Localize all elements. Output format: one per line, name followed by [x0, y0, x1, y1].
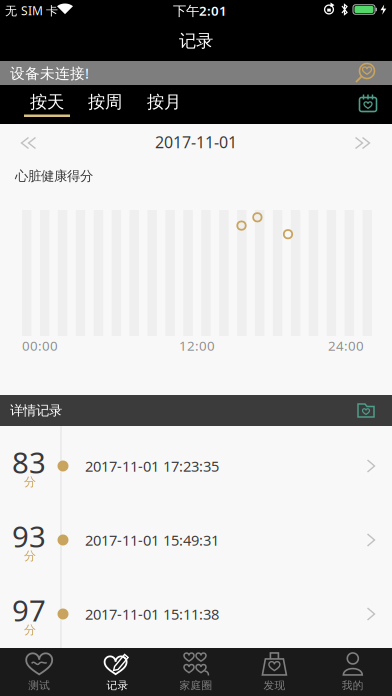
button[interactable]: 后一天 [349, 133, 373, 153]
staticText: 97 [12, 590, 46, 629]
button[interactable]: 测试 [0, 648, 78, 696]
button[interactable]: 93 [0, 500, 392, 574]
staticText: 分 [24, 623, 36, 637]
staticText: 分 [24, 549, 36, 563]
staticText: 按月 [147, 91, 181, 113]
staticText: 无 SIM 卡 [5, 2, 58, 18]
staticText: 2017-11-01 [155, 131, 237, 153]
staticText: 83 [12, 442, 46, 481]
button[interactable]: 前一天 [18, 133, 42, 153]
staticText: 2017-11-01 15:11:38 [85, 604, 219, 624]
staticText: 分 [24, 475, 36, 489]
button[interactable]: 发现 [235, 648, 314, 696]
staticText: 我的 [342, 679, 364, 692]
staticText: 按周 [88, 91, 122, 113]
staticText: 心脏健康得分 [15, 168, 93, 184]
staticText: 12:00 [179, 337, 215, 354]
staticText: 93 [12, 516, 46, 555]
button[interactable]: 97 [0, 574, 392, 648]
button[interactable]: 83 [0, 426, 392, 500]
button[interactable]: 导出记录 [357, 402, 375, 419]
button[interactable]: 选择日期 [357, 91, 379, 115]
staticText: 详情记录 [10, 402, 62, 419]
button[interactable]: 记录 [78, 648, 157, 696]
staticText: 设备未连接! [10, 63, 89, 83]
staticText: 记录 [107, 679, 129, 692]
staticText: 测试 [28, 679, 50, 692]
staticText: 家庭圈 [179, 679, 212, 692]
staticText: 00:00 [22, 337, 58, 354]
button[interactable]: 家庭圈 [157, 648, 235, 696]
button[interactable]: 我的 [314, 648, 392, 696]
staticText: 按天 [30, 91, 64, 113]
staticText: 发现 [263, 679, 285, 692]
staticText: 2017-11-01 15:49:31 [85, 530, 219, 550]
button[interactable]: 按天 [24, 87, 70, 117]
staticText: 下午2:01 [173, 2, 227, 19]
button[interactable]: 搜索设备 [347, 61, 379, 85]
button[interactable]: 按月 [141, 87, 187, 117]
button[interactable]: 按周 [82, 87, 128, 117]
staticText: 24:00 [328, 337, 364, 354]
staticText: 2017-11-01 17:23:35 [85, 456, 219, 476]
staticText: 记录 [179, 30, 213, 52]
